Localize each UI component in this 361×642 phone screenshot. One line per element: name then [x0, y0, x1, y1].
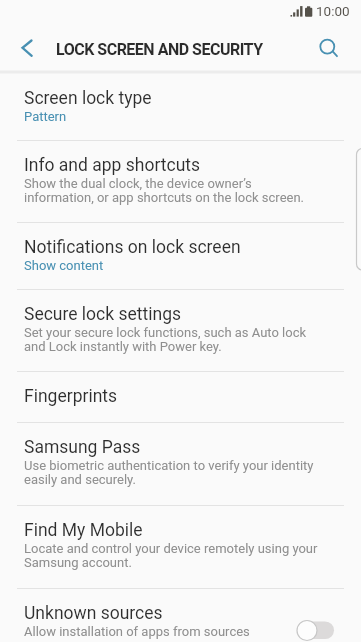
staticText: easily and securely.: [24, 472, 136, 487]
button[interactable]: [4, 24, 48, 68]
button[interactable]: Fingerprints: [0, 372, 361, 422]
staticText: Pattern: [24, 109, 67, 124]
staticText: and Lock instantly with Power key.: [24, 339, 222, 354]
staticText: Secure lock settings: [24, 304, 182, 325]
staticText: Locate and control your device remotely …: [24, 541, 318, 556]
button[interactable]: Screen lock type: [0, 74, 361, 140]
staticText: 10:00: [316, 3, 350, 19]
staticText: information, or app shortcuts on the loc…: [24, 190, 305, 205]
staticText: Samsung Pass: [24, 437, 141, 458]
button[interactable]: Info and app shortcuts: [0, 141, 361, 222]
button[interactable]: Unknown sources: [0, 589, 361, 642]
staticText: Set your secure lock functions, such as …: [24, 325, 307, 340]
staticText: Fingerprints: [24, 386, 118, 407]
staticText: Samsung account.: [24, 555, 132, 570]
staticText: Show the dual clock, the device owner’s: [24, 176, 252, 191]
button[interactable]: Samsung Pass: [0, 423, 361, 505]
staticText: Use biometric authentication to verify y…: [24, 458, 314, 473]
staticText: LOCK SCREEN AND SECURITY: [56, 40, 263, 59]
staticText: Screen lock type: [24, 88, 152, 109]
button[interactable]: Secure lock settings: [0, 290, 361, 371]
staticText: Info and app shortcuts: [24, 155, 201, 176]
staticText: Unknown sources: [24, 603, 163, 624]
staticText: Show content: [24, 258, 104, 273]
button[interactable]: Find My Mobile: [0, 506, 361, 588]
button[interactable]: [308, 26, 352, 70]
staticText: Find My Mobile: [24, 520, 143, 541]
staticText: Notifications on lock screen: [24, 237, 241, 258]
staticText: Allow installation of apps from sources: [24, 624, 250, 639]
button[interactable]: Notifications on lock screen: [0, 223, 361, 289]
